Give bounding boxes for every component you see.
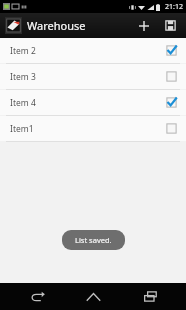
button[interactable]: Add item	[133, 13, 155, 38]
button[interactable]: Item 3	[0, 64, 186, 89]
staticText: 21:12	[165, 2, 183, 12]
staticText: Item 4	[10, 97, 36, 109]
button[interactable]: Back	[17, 283, 57, 310]
staticText: List saved.	[75, 235, 112, 245]
staticText: Item1	[10, 123, 34, 135]
staticText: Item 3	[10, 71, 36, 83]
button[interactable]: Save list	[159, 13, 181, 38]
button[interactable]: Home	[73, 283, 113, 310]
button[interactable]: Item 2	[0, 38, 186, 63]
button[interactable]: Item1	[0, 116, 186, 141]
staticText: Item 2	[10, 45, 36, 57]
staticText: Warehouse	[27, 18, 86, 33]
button[interactable]: Recent apps	[130, 283, 170, 310]
button[interactable]: Item 4	[0, 90, 186, 115]
